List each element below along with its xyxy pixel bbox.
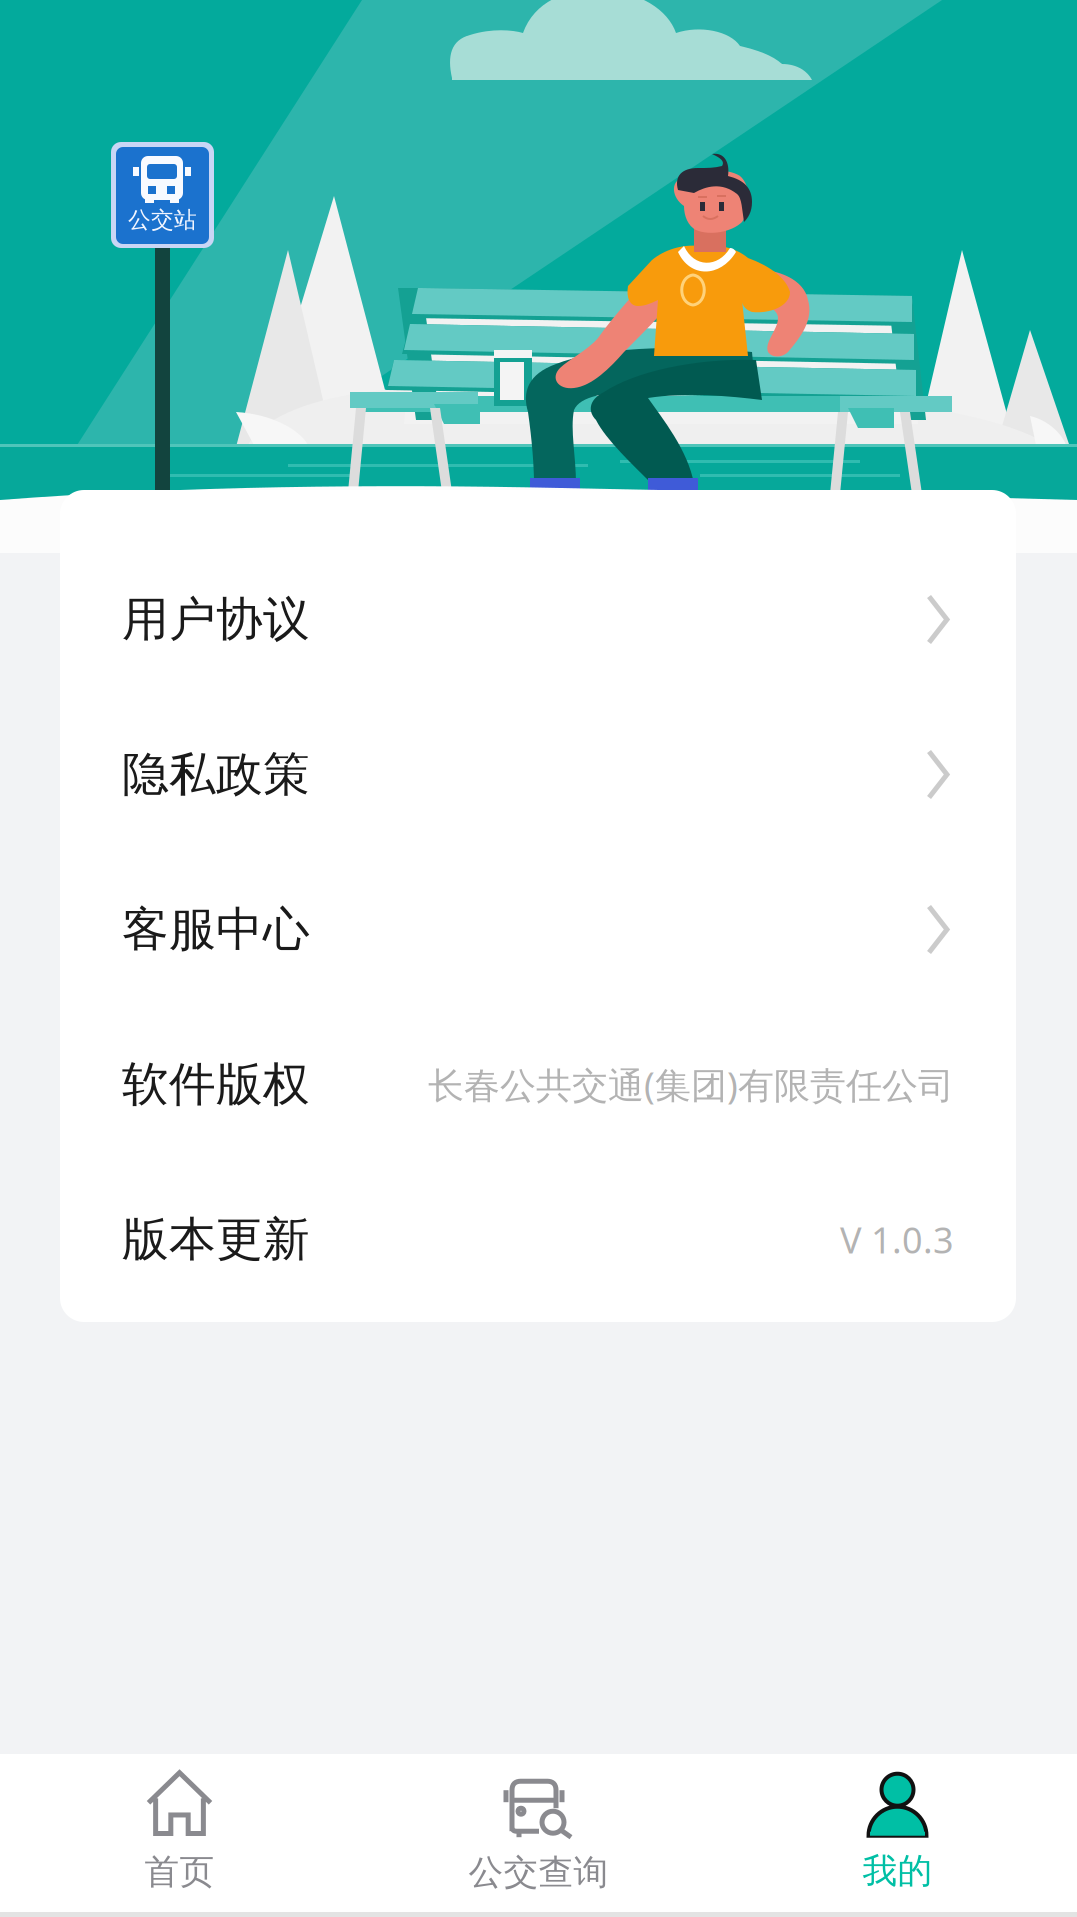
- staticText: 首页: [144, 1851, 214, 1893]
- button[interactable]: 版本更新: [60, 1162, 1016, 1317]
- staticText: 用户协议: [122, 591, 310, 648]
- staticText: 客服中心: [122, 901, 310, 958]
- staticText: 公交站: [128, 206, 197, 234]
- staticText: 长春公共交通(集团)有限责任公司: [428, 1061, 954, 1108]
- button[interactable]: 公交查询: [359, 1754, 718, 1912]
- staticText: 版本更新: [122, 1211, 310, 1268]
- button[interactable]: 首页: [0, 1754, 359, 1912]
- button[interactable]: 用户协议: [60, 542, 1016, 697]
- staticText: V 1.0.3: [840, 1216, 954, 1263]
- button[interactable]: 客服中心: [60, 852, 1016, 1007]
- button[interactable]: 我的: [718, 1754, 1077, 1912]
- staticText: 隐私政策: [122, 746, 310, 803]
- staticText: 我的: [862, 1850, 932, 1892]
- staticText: 软件版权: [122, 1056, 310, 1113]
- button[interactable]: 软件版权: [60, 1007, 1016, 1162]
- staticText: 公交查询: [468, 1851, 608, 1894]
- button[interactable]: 隐私政策: [60, 697, 1016, 852]
